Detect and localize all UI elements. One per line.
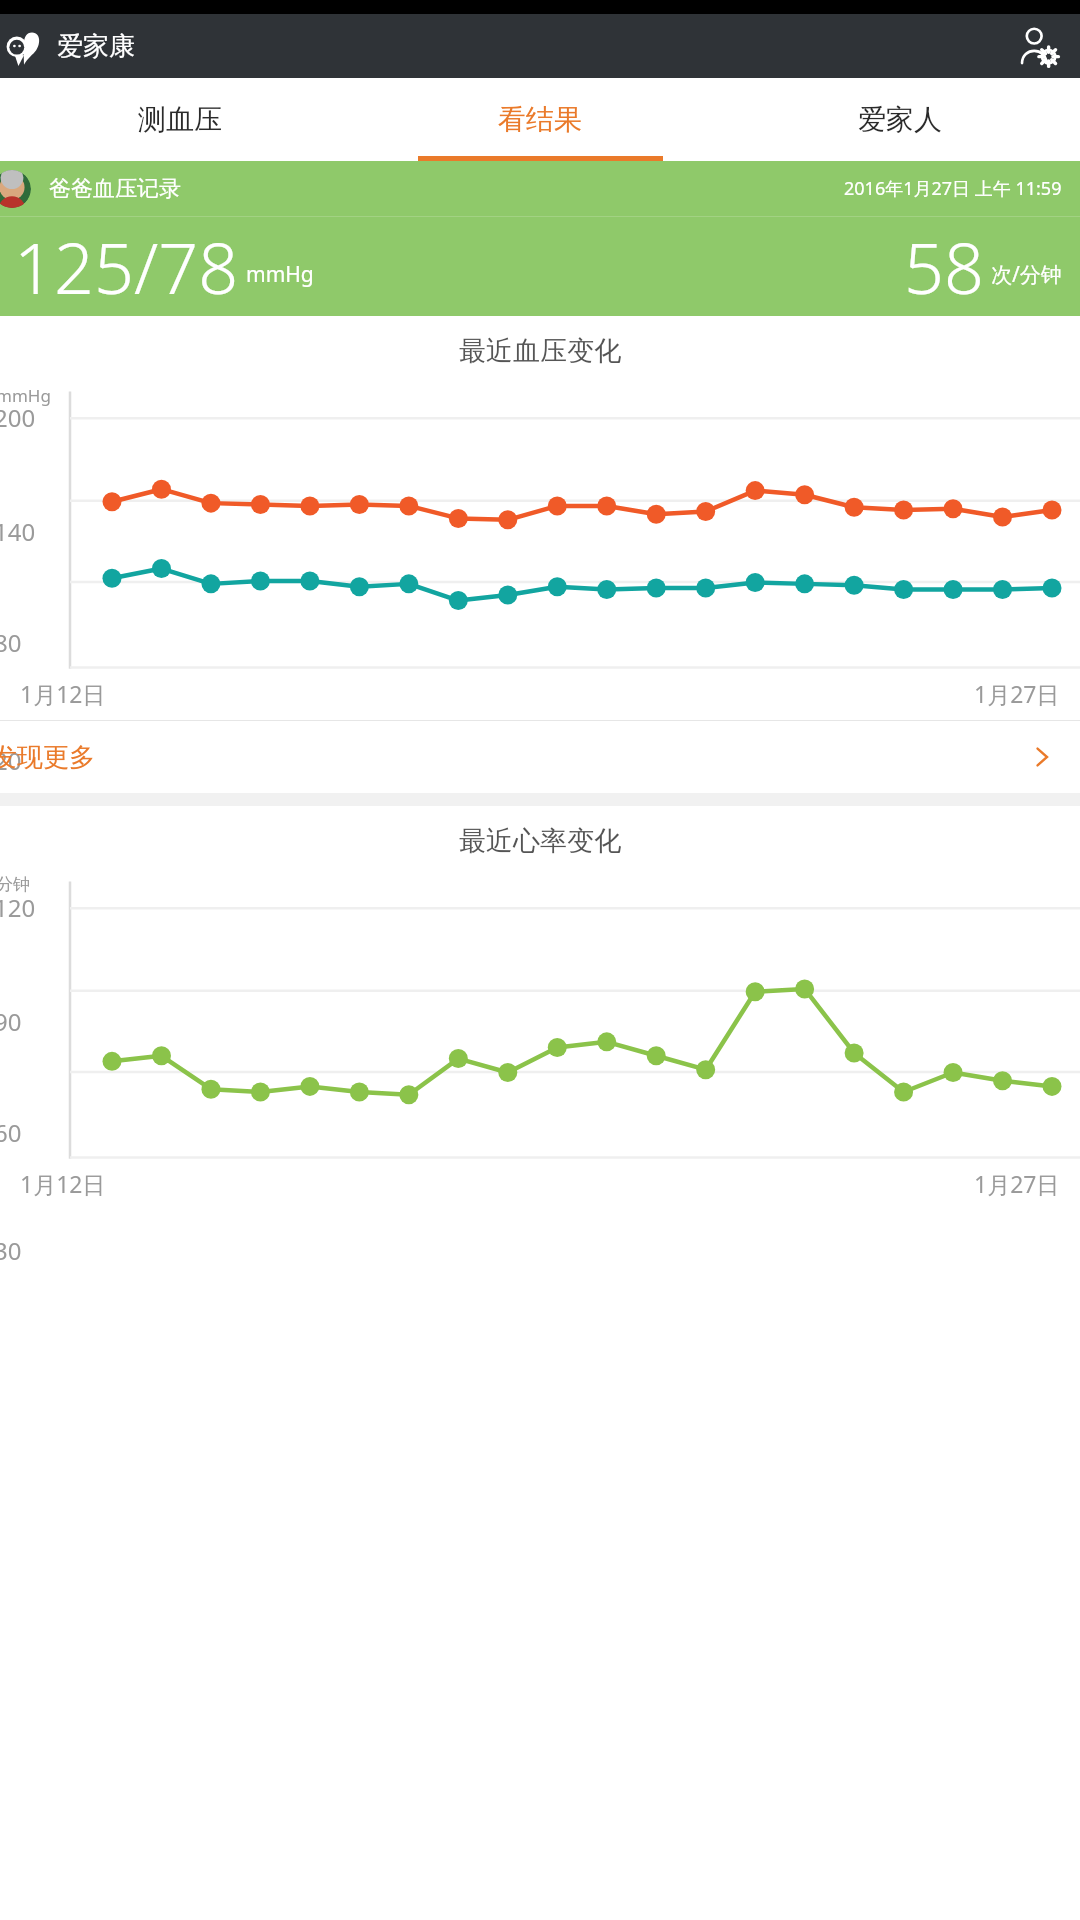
button[interactable]: 测血压 <box>0 78 360 161</box>
staticText: 最近血压变化 <box>459 334 621 368</box>
button[interactable]: Account settings <box>1012 20 1064 72</box>
staticText: 1月27日 <box>974 1168 1060 1199</box>
staticText: 60 <box>0 1116 22 1149</box>
button[interactable]: 看结果 <box>360 78 720 161</box>
staticText: 30 <box>0 1234 22 1267</box>
staticText: 1月27日 <box>974 678 1060 709</box>
staticText: 测血压 <box>138 102 222 137</box>
staticText: 120 <box>0 891 36 924</box>
staticText: 发现更多 <box>0 741 95 774</box>
staticText: mmHg <box>0 384 51 407</box>
staticText: mmHg <box>246 260 314 289</box>
staticText: 最近心率变化 <box>459 824 621 858</box>
staticText: 200 <box>0 401 36 434</box>
staticText: 爸爸血压记录 <box>49 175 181 203</box>
staticText: 次/分钟 <box>991 260 1062 289</box>
staticText: 看结果 <box>498 102 582 137</box>
staticText: 分钟 <box>0 874 30 895</box>
button[interactable]: 发现更多 <box>0 721 1080 793</box>
staticText: 1月12日 <box>20 1168 106 1199</box>
staticText: 58 <box>904 219 984 314</box>
staticText: 140 <box>0 515 36 548</box>
staticText: 2016年1月27日 上午 11:59 <box>844 176 1062 201</box>
staticText: 80 <box>0 626 22 659</box>
staticText: 90 <box>0 1005 22 1038</box>
staticText: 1月12日 <box>20 678 106 709</box>
staticText: 125/78 <box>14 219 239 314</box>
button[interactable]: 爱家人 <box>720 78 1080 161</box>
staticText: 爱家康 <box>57 30 135 63</box>
staticText: 爱家人 <box>858 102 942 137</box>
staticText: 20 <box>0 744 22 777</box>
